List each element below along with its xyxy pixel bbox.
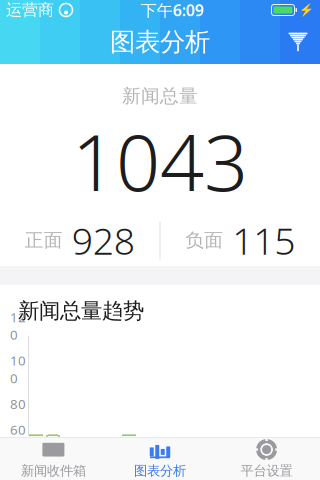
button[interactable]: 筛选 <box>276 20 320 64</box>
staticText: 运营商 <box>6 0 54 20</box>
staticText: 新闻总量 <box>122 85 198 108</box>
staticText: 115 <box>232 215 295 265</box>
staticText: 1043 <box>72 110 248 212</box>
staticText: 新闻收件箱 <box>21 463 86 479</box>
staticText: 负面 <box>185 229 223 252</box>
staticText: 正面 <box>25 229 63 252</box>
staticText: 下午6:09 <box>141 0 204 21</box>
staticText: 图表分析 <box>110 26 210 57</box>
staticText: 120 <box>10 308 26 343</box>
staticText: 80 <box>10 395 26 413</box>
staticText: 100 <box>10 351 26 387</box>
button[interactable]: 新闻收件箱 <box>0 437 107 480</box>
button[interactable]: 平台设置 <box>213 437 320 480</box>
staticText: 新闻总量趋势 <box>18 298 144 324</box>
staticText: 图表分析 <box>134 463 186 479</box>
staticText: 平台设置 <box>241 463 293 479</box>
button[interactable]: 图表分析 <box>107 437 213 480</box>
staticText: ⚡ <box>299 3 314 17</box>
staticText: 928 <box>72 215 135 265</box>
staticText: 60 <box>10 421 26 438</box>
